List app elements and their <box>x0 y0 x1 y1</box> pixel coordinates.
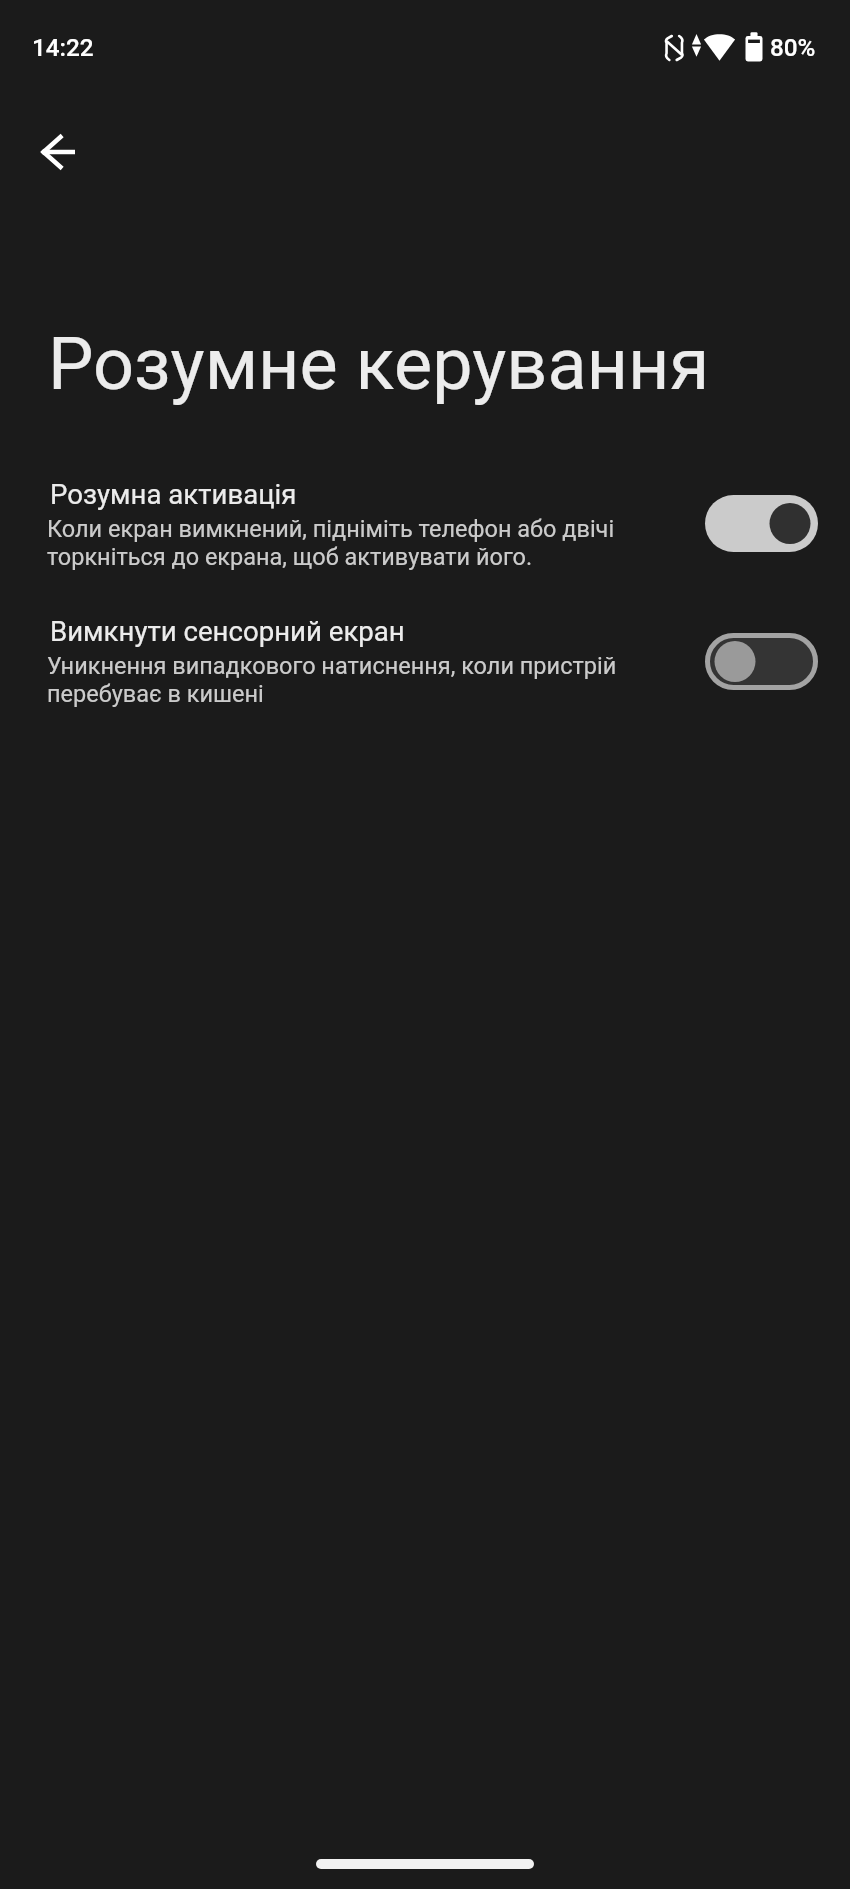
button[interactable]: Back <box>16 110 100 194</box>
button[interactable]: Вимкнути сенсорний екран <box>0 615 850 745</box>
staticText: торкніться до екрана, щоб активувати йог… <box>47 543 533 571</box>
staticText: Розумна активація <box>50 478 297 510</box>
button[interactable]: Switch off <box>705 633 818 690</box>
button[interactable]: Switch on <box>705 495 818 552</box>
staticText: перебуває в кишені <box>47 680 264 708</box>
button[interactable]: Розумна активація <box>0 478 850 608</box>
staticText: 14:22 <box>32 33 94 61</box>
staticText: Вимкнути сенсорний екран <box>50 615 405 647</box>
staticText: Розумне керування <box>48 322 710 406</box>
button[interactable]: Home <box>316 1859 534 1869</box>
staticText: Уникнення випадкового натиснення, коли п… <box>47 652 617 680</box>
staticText: Коли екран вимкнений, підніміть телефон … <box>47 515 615 543</box>
staticText: 80% <box>770 33 816 61</box>
